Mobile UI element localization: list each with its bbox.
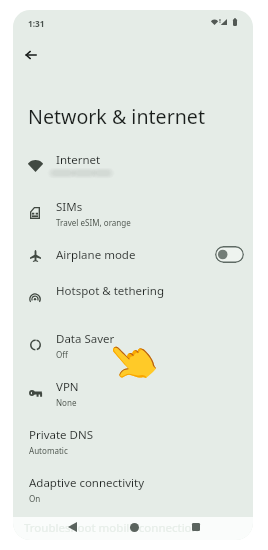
- button[interactable]: Airplane mode: [13, 249, 253, 269]
- staticText: 1:31: [28, 18, 45, 29]
- button[interactable]: Airplane mode: [215, 246, 244, 263]
- staticText: Off: [56, 349, 68, 360]
- button[interactable]: Navigate up: [15, 39, 47, 71]
- button[interactable]: Private DNS: [13, 429, 253, 459]
- staticText: 👆: [96, 326, 166, 396]
- staticText: Adaptive connectivity: [29, 475, 145, 491]
- staticText: Network & internet: [28, 103, 205, 130]
- button[interactable]: Data Saver: [13, 333, 253, 363]
- staticText: On: [29, 493, 41, 504]
- staticText: Automatic: [29, 445, 68, 456]
- button[interactable]: Adaptive connectivity: [13, 477, 253, 507]
- staticText: None: [56, 397, 77, 408]
- staticText: VPN: [56, 379, 79, 395]
- button[interactable]: Back: [62, 517, 82, 537]
- button[interactable]: Hotspot & tethering: [13, 285, 253, 305]
- staticText: Troubleshoot mobile connection: [24, 520, 199, 536]
- staticText: Hotspot & tethering: [56, 283, 164, 299]
- staticText: Travel eSIM, orange: [56, 217, 131, 228]
- staticText: Data Saver: [56, 331, 115, 347]
- button[interactable]: VPN: [13, 381, 253, 411]
- staticText: SIMs: [56, 199, 83, 215]
- staticText: Internet: [56, 152, 101, 168]
- button[interactable]: Internet: [13, 154, 253, 184]
- staticText: Private DNS: [29, 427, 94, 443]
- staticText: Airplane mode: [56, 247, 136, 263]
- button[interactable]: Home: [124, 517, 144, 537]
- other: Pointing hand: [96, 326, 166, 396]
- button[interactable]: SIMs: [13, 201, 253, 231]
- button[interactable]: Recent apps: [186, 517, 206, 537]
